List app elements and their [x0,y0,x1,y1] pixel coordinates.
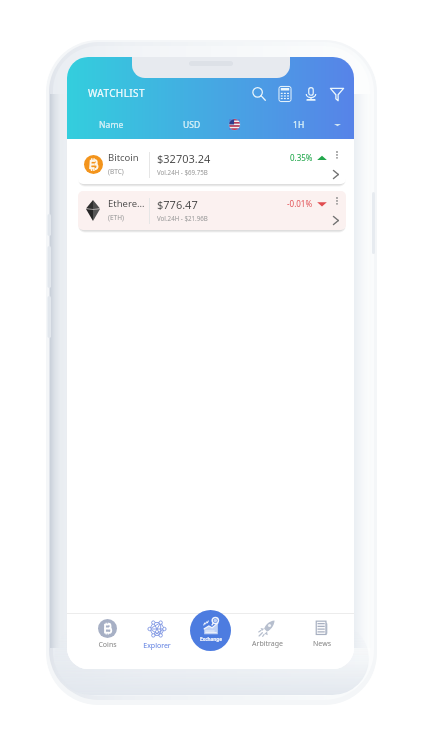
staticText: Explorer [143,641,171,651]
staticText: 0.35% [290,152,313,163]
button[interactable]: Arbitrage [244,619,290,649]
button[interactable]: Explorer [134,619,180,651]
button[interactable]: More options [327,191,346,210]
staticText: $776.47 [157,197,198,212]
staticText: Vol.24H - $69.75B [157,168,208,176]
staticText: (ETH) [108,213,124,222]
staticText: Exchange [200,636,222,642]
button[interactable]: Ethere… [78,191,346,230]
staticText: Vol.24H - $21.96B [157,214,208,222]
staticText: Arbitrage [252,639,283,649]
staticText: (BTC) [108,167,124,176]
button[interactable]: Voice search [300,83,321,104]
button[interactable]: Exchange [190,610,231,651]
button[interactable]: News [299,619,345,649]
staticText: 1H [293,119,305,131]
button[interactable]: Open details [325,165,346,184]
staticText: WATCHLIST [88,86,145,100]
staticText: $32703.24 [157,151,211,166]
staticText: Ethere… [108,197,145,210]
staticText: USD [183,119,201,131]
staticText: Bitcoin [108,151,139,164]
button[interactable]: Calculator [274,83,295,104]
button[interactable]: Coins [84,619,130,650]
button[interactable]: More options [327,145,346,164]
staticText: News [313,639,331,649]
staticText: Name [99,119,124,131]
button[interactable]: Search [248,83,269,104]
staticText: Coins [98,640,117,650]
staticText: -0.01% [287,198,313,209]
button[interactable]: Open details [325,211,346,230]
button[interactable]: Filter [326,83,347,104]
button[interactable]: Bitcoin [78,145,346,184]
